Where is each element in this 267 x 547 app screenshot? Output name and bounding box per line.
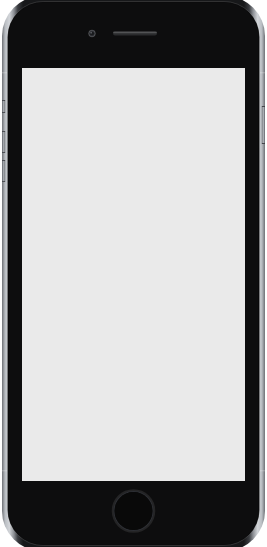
button[interactable]: Device screen <box>0 0 267 547</box>
